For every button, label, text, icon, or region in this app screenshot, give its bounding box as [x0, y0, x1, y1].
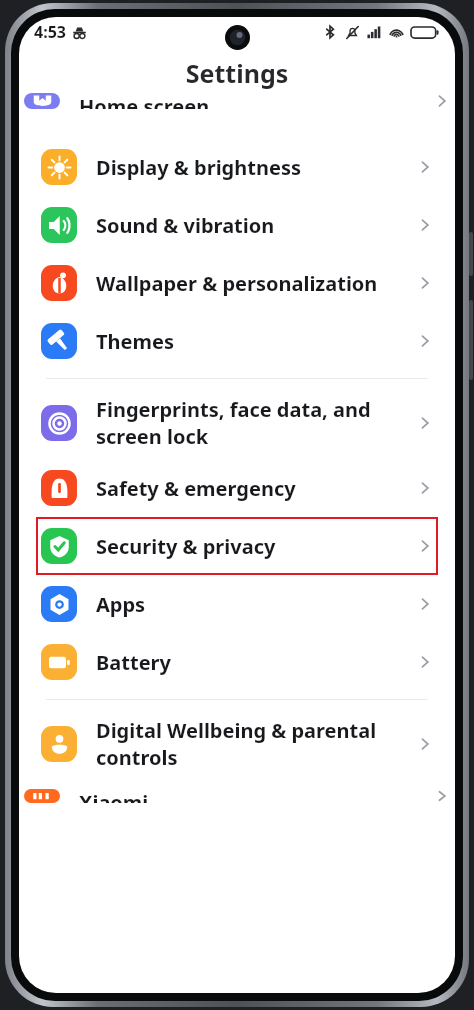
staticText: Wallpaper & personalization	[96, 270, 409, 297]
button[interactable]: Safety & emergency	[36, 459, 438, 517]
button[interactable]: Wallpaper & personalization	[36, 254, 438, 312]
staticText: Battery	[96, 649, 409, 676]
button[interactable]: Digital Wellbeing & parental controls	[36, 708, 438, 780]
staticText: 4:53	[34, 21, 66, 43]
button[interactable]: Fingerprints, face data, and screen lock	[36, 387, 438, 459]
button[interactable]: Security & privacy	[36, 517, 438, 575]
staticText: Home screen	[79, 93, 426, 109]
staticText: Xiaomi	[79, 789, 426, 803]
staticText: Settings	[19, 56, 455, 90]
staticText: Themes	[96, 328, 409, 355]
button[interactable]: Home screen	[19, 104, 455, 138]
button[interactable]: Themes	[36, 312, 438, 370]
button[interactable]: Apps	[36, 575, 438, 633]
staticText: Safety & emergency	[96, 475, 409, 502]
staticText: Sound & vibration	[96, 212, 409, 239]
button[interactable]: Xiaomi	[19, 780, 455, 812]
staticText: Digital Wellbeing & parental controls	[96, 717, 409, 771]
staticText: Security & privacy	[96, 533, 409, 560]
button[interactable]: Display & brightness	[36, 138, 438, 196]
button[interactable]: Battery	[36, 633, 438, 691]
staticText: Display & brightness	[96, 154, 409, 181]
button[interactable]: Sound & vibration	[36, 196, 438, 254]
staticText: Fingerprints, face data, and screen lock	[96, 396, 409, 450]
staticText: Apps	[96, 591, 409, 618]
